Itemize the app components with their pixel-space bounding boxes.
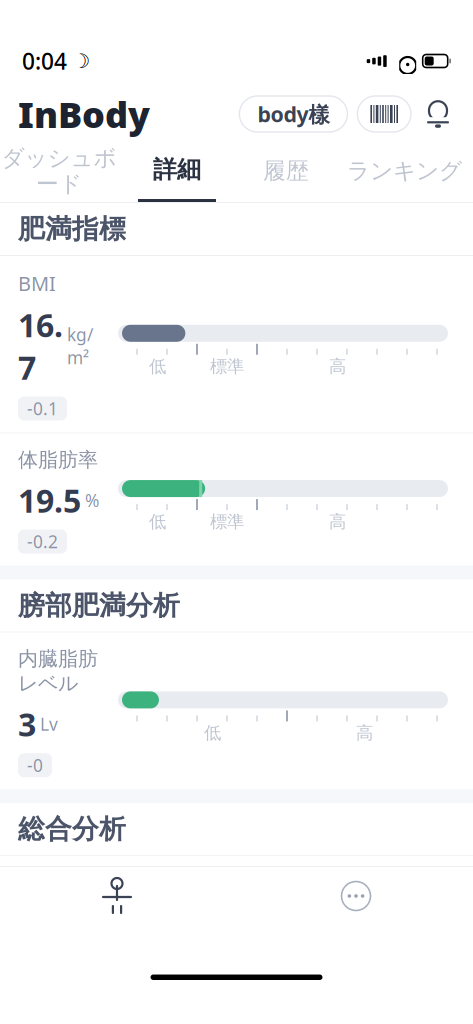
staticText: 16.7 bbox=[18, 304, 63, 389]
staticText: 低 bbox=[149, 356, 166, 377]
button[interactable]: ランキング bbox=[336, 140, 473, 202]
staticText: 内臓脂肪レベル bbox=[18, 647, 98, 696]
button[interactable]: body樣 bbox=[239, 96, 347, 132]
staticText: 膀部肥満分析 bbox=[18, 589, 180, 622]
staticText: 標準 bbox=[210, 511, 244, 532]
staticText: body樣 bbox=[257, 100, 329, 128]
staticText: ダッシュボ bbox=[1, 144, 116, 172]
staticText: 低 bbox=[204, 722, 221, 744]
button[interactable]: ダッシュボ bbox=[0, 140, 118, 202]
staticText: InBody bbox=[18, 90, 150, 138]
staticText: 高 bbox=[356, 722, 373, 744]
staticText: ード bbox=[36, 170, 82, 198]
staticText: 高 bbox=[329, 356, 346, 377]
staticText: 3 bbox=[18, 703, 36, 745]
button[interactable]: 詳細 bbox=[118, 140, 236, 202]
staticText: 詳細 bbox=[153, 155, 201, 184]
staticText: -0 bbox=[27, 754, 43, 777]
staticText: 低 bbox=[149, 511, 166, 532]
staticText: 0:04 bbox=[22, 46, 67, 76]
staticText: -0.2 bbox=[27, 530, 58, 553]
staticText: 履歴 bbox=[263, 157, 309, 185]
staticText: 標準 bbox=[210, 356, 244, 377]
staticText: ☽ bbox=[72, 50, 90, 72]
staticText: 体脂肪率 bbox=[18, 447, 98, 472]
staticText: 高 bbox=[329, 511, 346, 532]
button[interactable]: Notifications bbox=[421, 96, 455, 132]
staticText: ランキング bbox=[347, 157, 462, 185]
staticText: kg/m² bbox=[67, 323, 93, 369]
button[interactable]: More bbox=[301, 867, 411, 925]
staticText: 総合分析 bbox=[18, 813, 126, 846]
staticText: 19.5 bbox=[18, 479, 81, 522]
button[interactable]: Body composition bbox=[62, 867, 172, 925]
button[interactable]: InBody bbox=[18, 90, 150, 138]
button[interactable]: Scan barcode bbox=[357, 96, 411, 132]
staticText: BMI bbox=[18, 270, 56, 297]
staticText: 肥満指標 bbox=[18, 213, 126, 245]
staticText: % bbox=[85, 489, 99, 512]
staticText: Lv bbox=[40, 712, 58, 735]
button[interactable]: 履歴 bbox=[236, 140, 336, 202]
staticText: -0.1 bbox=[27, 397, 58, 420]
